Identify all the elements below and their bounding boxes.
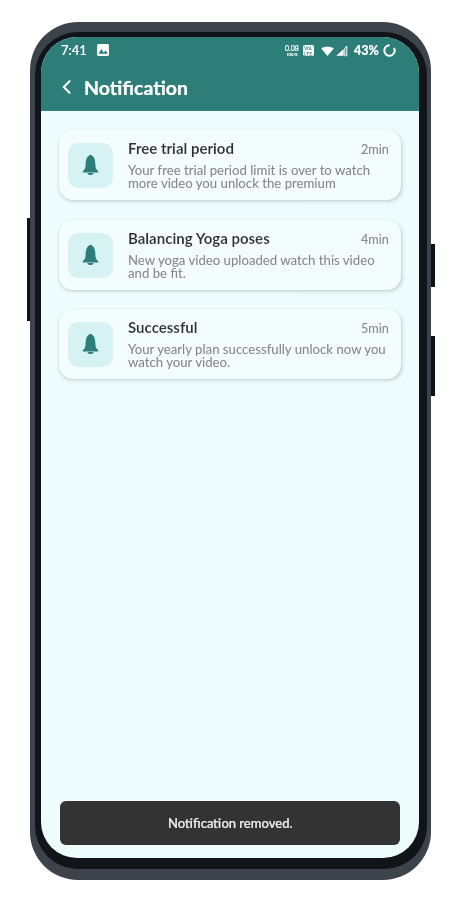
staticText: Notification removed. [168,815,293,831]
staticText: New yoga video uploaded watch this video… [128,252,375,281]
button[interactable]: Notification removed. [60,801,400,845]
staticText: 5min [361,320,389,335]
staticText: Your yearly plan successfully unlock now… [128,341,386,370]
staticText: 7:41 [61,42,87,58]
staticText: KB/S [287,52,298,57]
button[interactable]: Balancing Yoga poses [59,220,401,290]
staticText: Successful [128,318,198,336]
staticText: VoL [304,45,313,51]
staticText: Free trial period [128,139,234,157]
staticText: LTE [304,51,313,56]
button[interactable]: Back [53,73,81,101]
staticText: Your free trial period limit is over to … [128,162,371,191]
staticText: Notification [84,76,188,99]
staticText: 4min [361,231,389,246]
staticText: 0.08 [285,44,299,52]
button[interactable]: Successful [59,309,401,379]
staticText: 2min [361,141,389,156]
staticText: 43% [354,43,379,58]
button[interactable]: Free trial period [59,130,401,200]
staticText: Balancing Yoga poses [128,229,270,247]
